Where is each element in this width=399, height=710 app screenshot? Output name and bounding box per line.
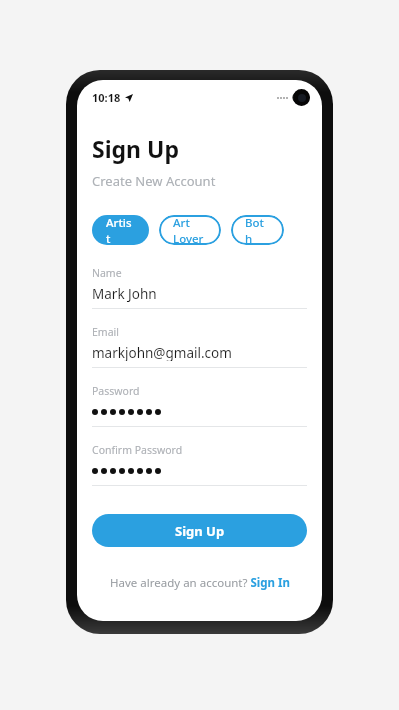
staticText: markjohn@gmail.com: [92, 344, 232, 361]
staticText: Mark John: [92, 285, 157, 302]
button[interactable]: Have already an account? Sign In: [92, 575, 307, 591]
button[interactable]: Art Lover: [159, 215, 221, 245]
button[interactable]: Both: [231, 215, 284, 245]
staticText: Confirm Password: [92, 443, 183, 457]
staticText: Name: [92, 266, 122, 280]
button[interactable]: Artist: [92, 215, 149, 245]
staticText: Password: [92, 384, 140, 398]
staticText: Sign Up: [175, 522, 225, 540]
button[interactable]: Sign Up: [92, 514, 307, 547]
staticText: Both: [245, 215, 270, 245]
staticText: 10:18: [92, 90, 121, 105]
staticText: Email: [92, 325, 119, 339]
staticText: Artist: [106, 215, 135, 245]
staticText: Sign Up: [92, 133, 179, 164]
staticText: Create New Account: [92, 172, 216, 190]
staticText: Have already an account? Sign In: [110, 575, 290, 591]
staticText: Art Lover: [173, 215, 207, 245]
